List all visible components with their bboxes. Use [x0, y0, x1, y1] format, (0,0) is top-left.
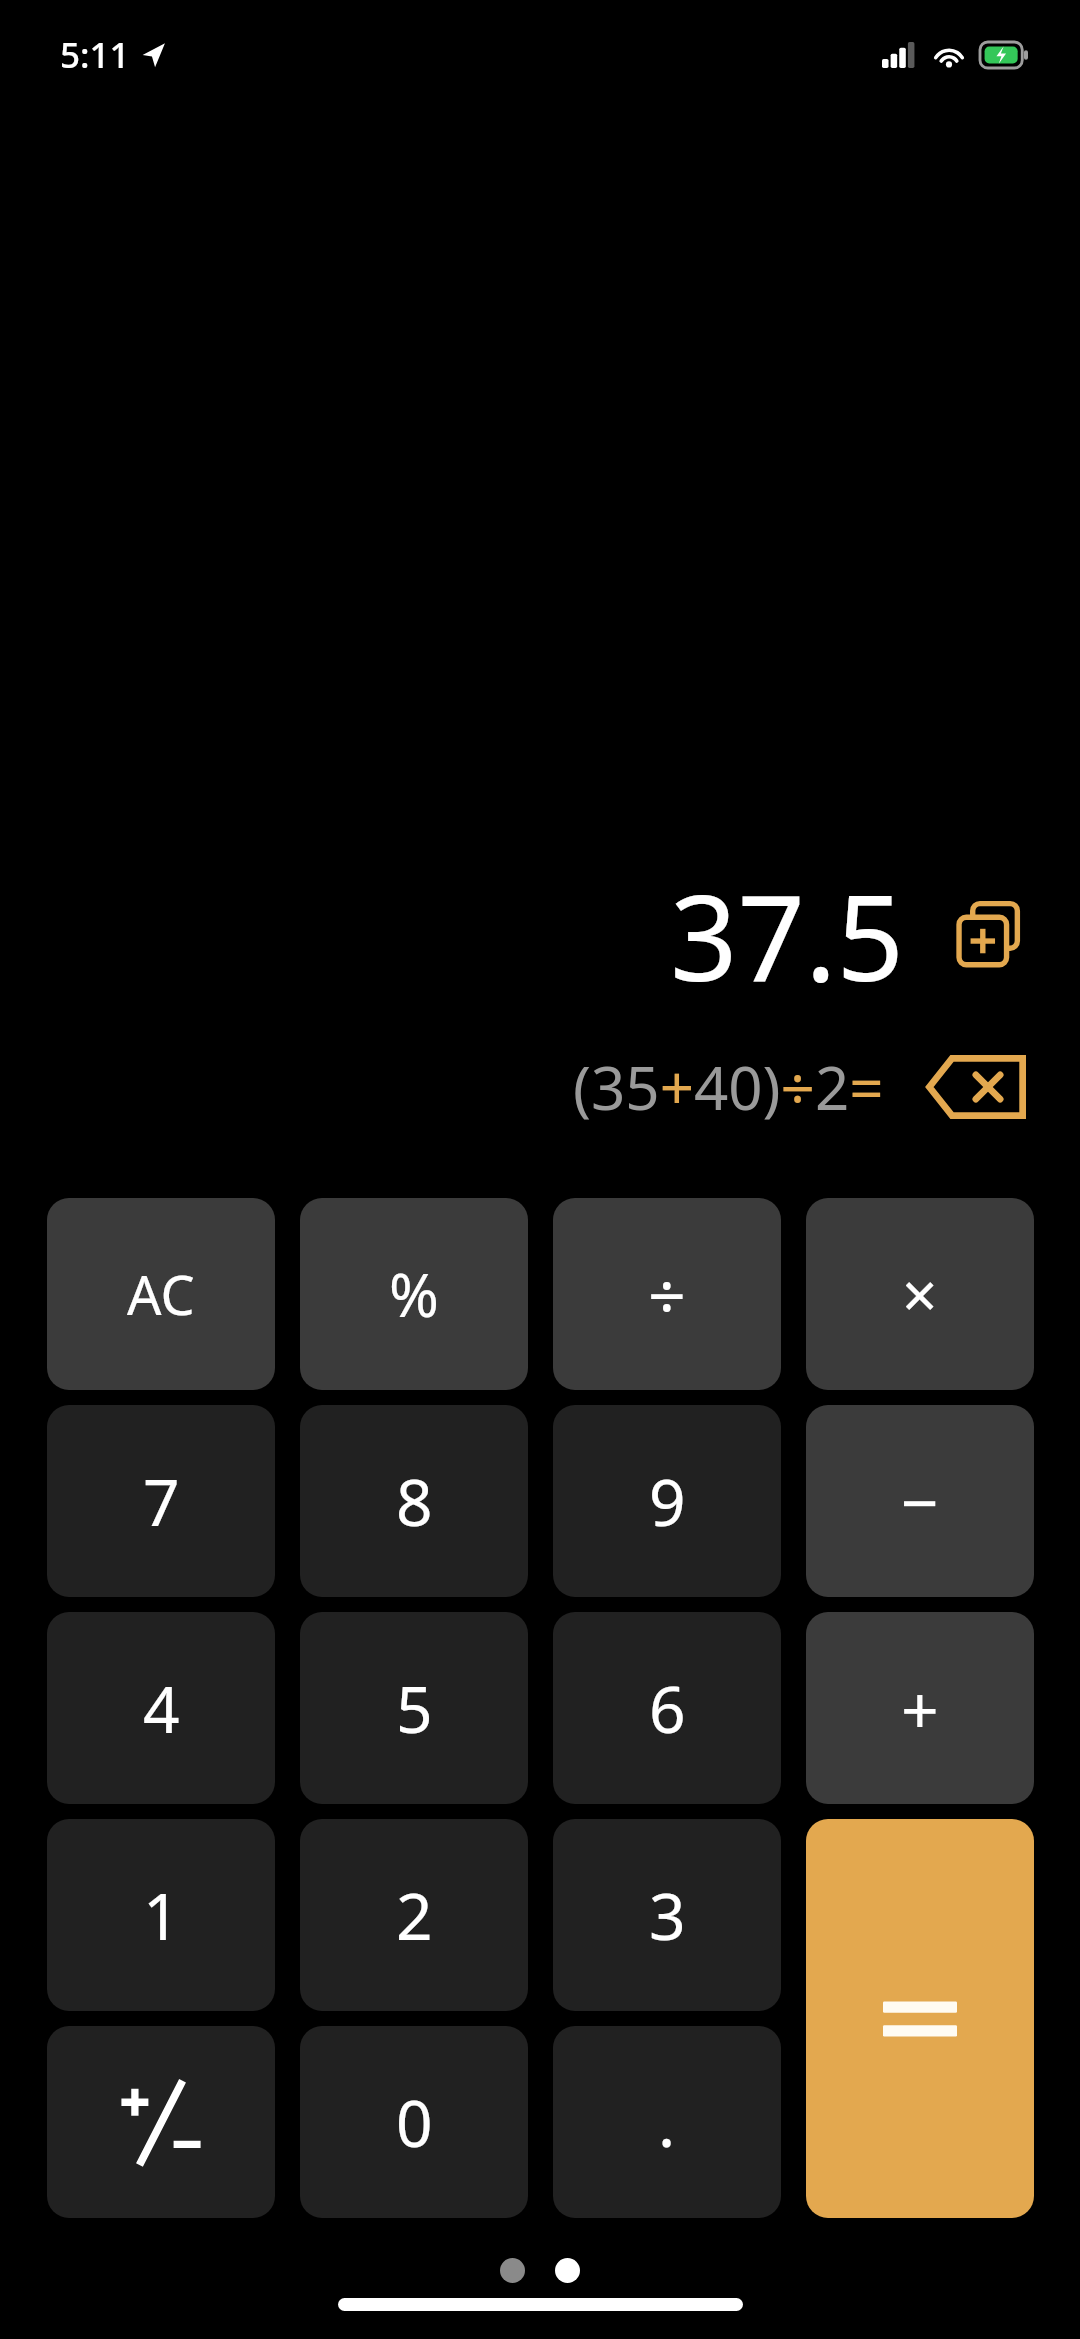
button[interactable]: × [806, 1198, 1034, 1390]
button[interactable]: ÷ [553, 1198, 781, 1390]
staticText: 3 [649, 1872, 686, 1959]
button[interactable]: . [553, 2026, 781, 2218]
staticText: 5:11 [60, 31, 130, 79]
staticText: 8 [396, 1458, 433, 1545]
staticText: + [901, 1663, 939, 1753]
button[interactable]: % [300, 1198, 528, 1390]
staticText: (35+40)÷2= [573, 1046, 884, 1128]
staticText: 2 [396, 1872, 433, 1959]
button[interactable]: − [806, 1405, 1034, 1597]
button[interactable]: 9 [553, 1405, 781, 1597]
staticText: ÷ [648, 1249, 686, 1339]
staticText: 4 [143, 1665, 180, 1752]
button[interactable]: 3 [553, 1819, 781, 2011]
staticText: AC [127, 1257, 195, 1331]
button[interactable]: + [806, 1612, 1034, 1804]
staticText: 0 [396, 2079, 433, 2166]
button[interactable]: 0 [300, 2026, 528, 2218]
button[interactable]: 5 [300, 1612, 528, 1804]
staticText: % [389, 1253, 439, 1335]
staticText: 7 [143, 1458, 180, 1545]
staticText: 5 [396, 1665, 433, 1752]
button[interactable]: Equals [806, 1819, 1034, 2218]
staticText: 9 [649, 1458, 686, 1545]
button[interactable]: 7 [47, 1405, 275, 1597]
staticText: 37.5 [669, 855, 904, 1016]
staticText: − [901, 1456, 939, 1546]
button[interactable]: 6 [553, 1612, 781, 1804]
staticText: 6 [649, 1665, 686, 1752]
staticText: . [658, 2079, 676, 2166]
button[interactable]: 4 [47, 1612, 275, 1804]
staticText: 1 [143, 1872, 180, 1959]
button[interactable]: AC [47, 1198, 275, 1390]
button[interactable]: 2 [300, 1819, 528, 2011]
button[interactable]: Backspace [924, 1054, 1028, 1120]
button[interactable]: Plus minus [47, 2026, 275, 2218]
button[interactable]: 1 [47, 1819, 275, 2011]
button[interactable]: Add to memory [952, 898, 1028, 974]
button[interactable]: 8 [300, 1405, 528, 1597]
staticText: × [902, 1252, 938, 1336]
